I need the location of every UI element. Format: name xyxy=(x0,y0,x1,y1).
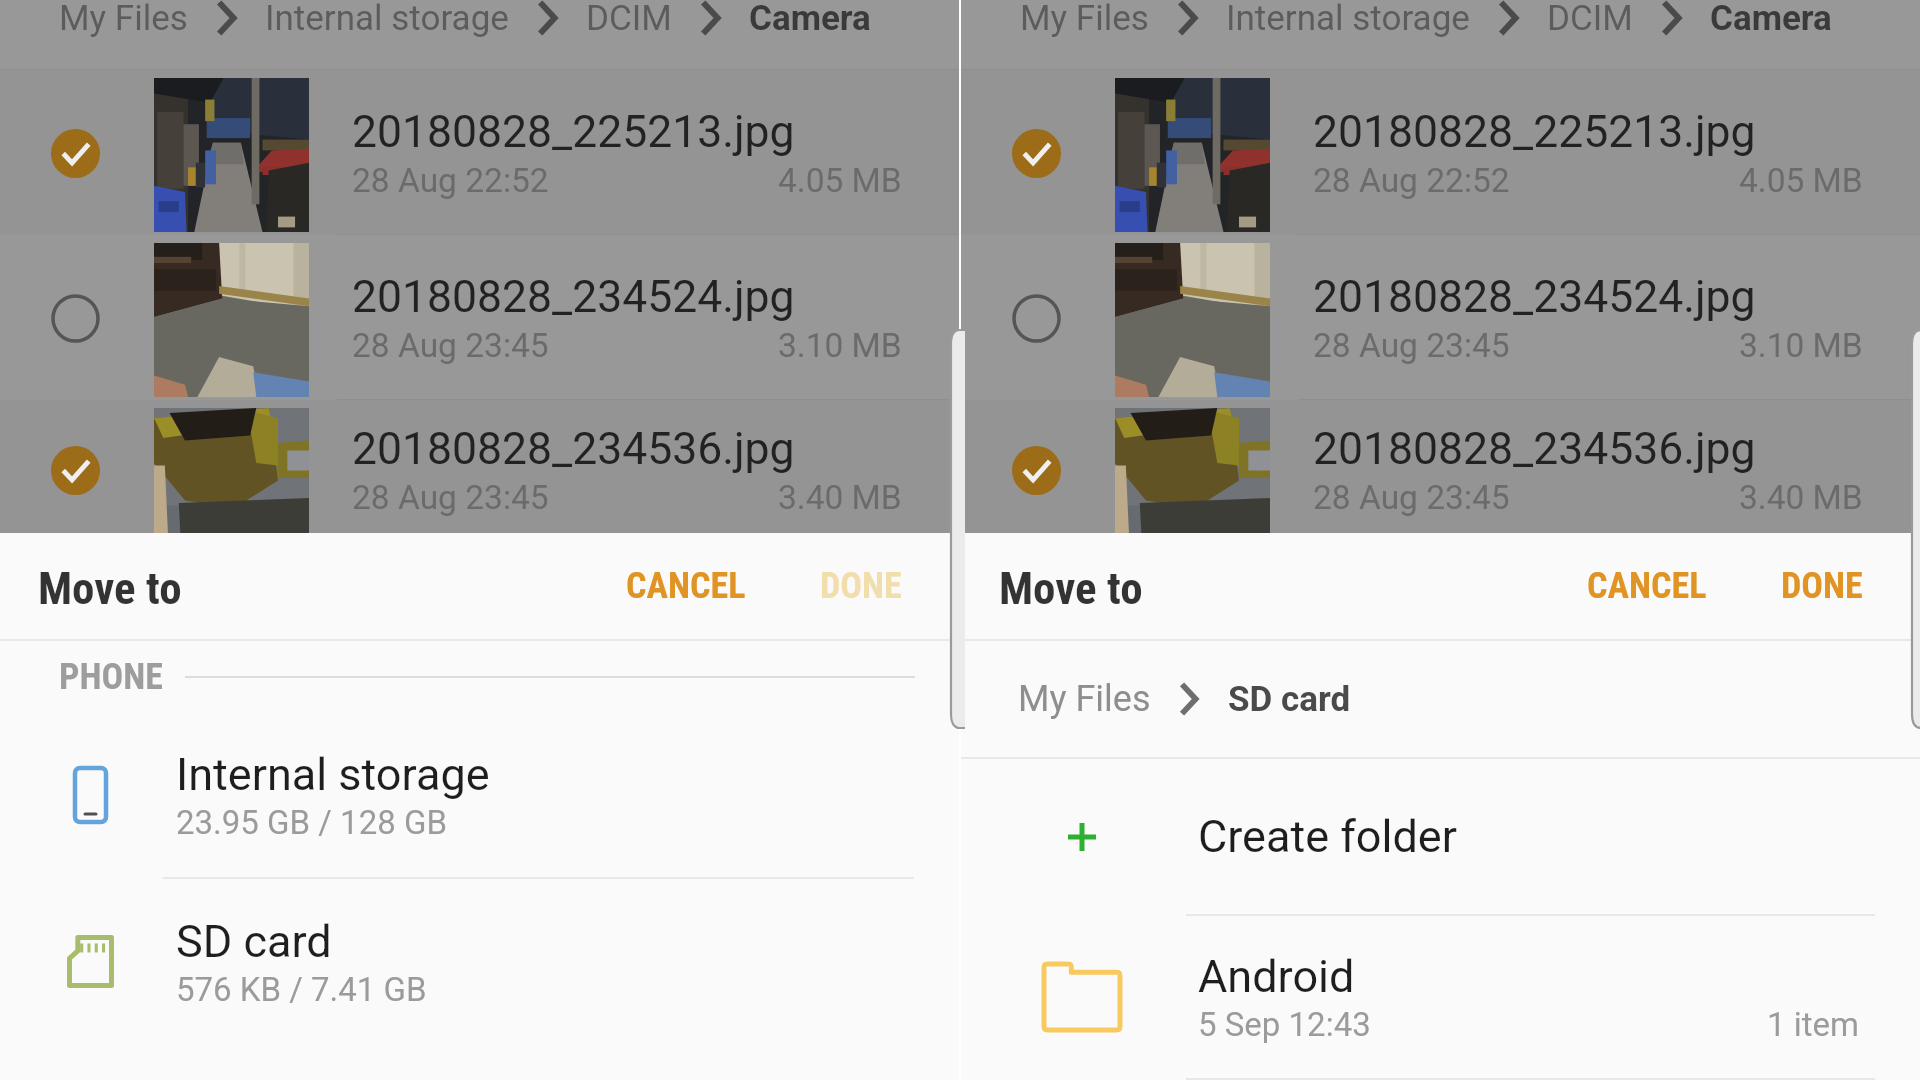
button[interactable]: Selected xyxy=(51,129,100,178)
staticText: 28 Aug 22:52 xyxy=(1313,161,1510,200)
staticText: 28 Aug 23:45 xyxy=(1313,326,1510,365)
button[interactable]: SD card xyxy=(1228,679,1351,720)
staticText: Create folder xyxy=(1198,810,1457,863)
button[interactable]: Selected xyxy=(1012,129,1061,178)
staticText: 3.40 MB xyxy=(778,478,902,517)
staticText: CANCEL xyxy=(626,565,746,607)
button[interactable]: Camera xyxy=(1710,0,1832,39)
button[interactable]: Selected xyxy=(0,400,959,533)
staticText: 28 Aug 23:45 xyxy=(352,326,549,365)
staticText: 20180828_225213.jpg xyxy=(1313,106,1756,158)
staticText: 28 Aug 22:52 xyxy=(352,161,549,200)
button[interactable]: Selected xyxy=(0,70,959,235)
button[interactable]: DONE xyxy=(1767,543,1877,629)
button[interactable]: Not selected xyxy=(1012,294,1061,343)
button[interactable]: Not selected xyxy=(961,235,1920,400)
staticText: 20180828_234524.jpg xyxy=(1313,271,1756,323)
staticText: 1 item xyxy=(1767,1005,1859,1044)
button[interactable]: Camera xyxy=(749,0,871,39)
button[interactable]: Selected xyxy=(1012,446,1061,495)
staticText: 5 Sep 12:43 xyxy=(1198,1005,1371,1044)
staticText: 28 Aug 23:45 xyxy=(352,478,549,517)
button[interactable]: DCIM xyxy=(1547,0,1633,39)
button[interactable]: Internal storage xyxy=(0,712,959,877)
button[interactable]: Internal storage xyxy=(1226,0,1470,39)
staticText: 20180828_234536.jpg xyxy=(1313,423,1756,475)
staticText: 4.05 MB xyxy=(778,161,902,200)
staticText: 20180828_225213.jpg xyxy=(352,106,795,158)
staticText: 3.40 MB xyxy=(1739,478,1863,517)
button[interactable]: DCIM xyxy=(586,0,672,39)
staticText: Move to xyxy=(999,562,1143,615)
button[interactable]: Selected xyxy=(961,400,1920,533)
button[interactable]: Create folder xyxy=(961,759,1920,914)
staticText: Android xyxy=(1198,950,1355,1003)
button[interactable]: Selected xyxy=(961,70,1920,235)
staticText: SD card xyxy=(176,915,332,968)
button[interactable]: CANCEL xyxy=(612,543,760,629)
staticText: 28 Aug 23:45 xyxy=(1313,478,1510,517)
staticText: 20180828_234536.jpg xyxy=(352,423,795,475)
button[interactable]: My Files xyxy=(1020,0,1149,39)
button[interactable]: DONE xyxy=(806,543,916,629)
button[interactable]: My Files xyxy=(59,0,188,39)
staticText: 3.10 MB xyxy=(1739,326,1863,365)
button[interactable]: Selected xyxy=(51,446,100,495)
button[interactable]: My Files xyxy=(1018,678,1151,720)
staticText: 23.95 GB / 128 GB xyxy=(176,803,447,842)
button[interactable]: SD card xyxy=(0,879,959,1044)
button[interactable]: Not selected xyxy=(0,235,959,400)
staticText: PHONE xyxy=(59,656,163,698)
staticText: 20180828_234524.jpg xyxy=(352,271,795,323)
staticText: Move to xyxy=(38,562,182,615)
button[interactable]: Not selected xyxy=(51,294,100,343)
staticText: 576 KB / 7.41 GB xyxy=(176,970,427,1009)
staticText: 4.05 MB xyxy=(1739,161,1863,200)
staticText: DONE xyxy=(1781,565,1863,607)
staticText: CANCEL xyxy=(1587,565,1707,607)
button[interactable]: Internal storage xyxy=(265,0,509,39)
staticText: DONE xyxy=(820,565,902,607)
staticText: 3.10 MB xyxy=(778,326,902,365)
button[interactable]: CANCEL xyxy=(1573,543,1721,629)
staticText: Internal storage xyxy=(176,748,490,801)
button[interactable]: Android xyxy=(961,916,1920,1078)
